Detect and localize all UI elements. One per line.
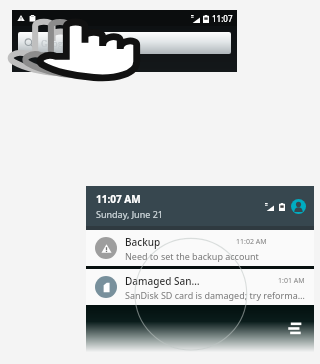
button[interactable]: Damaged SanDisk SD card [86, 269, 314, 305]
staticText: 11:07 [212, 13, 233, 24]
button[interactable]: Backup [86, 230, 314, 266]
staticText: 1:01 AM [278, 276, 305, 286]
staticText: Need to set the backup account [125, 250, 259, 262]
button[interactable]: Google search [18, 32, 231, 54]
staticText: 11:07 AM [96, 192, 141, 206]
staticText: Damaged SanDisk SD card [125, 274, 201, 288]
staticText: SanDisk SD card is damaged; try reformat… [125, 289, 305, 301]
staticText: 11:02 AM [236, 237, 267, 247]
staticText: Sunday, June 21 [96, 208, 163, 220]
staticText: Google [41, 37, 71, 49]
staticText: Backup [125, 235, 161, 249]
button[interactable]: User account [291, 199, 306, 214]
